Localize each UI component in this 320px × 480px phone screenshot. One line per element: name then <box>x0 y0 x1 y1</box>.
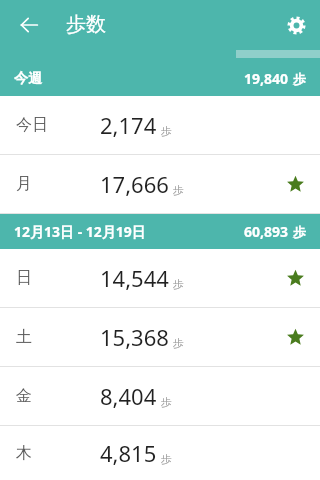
staticText: 歩 <box>173 336 184 350</box>
button[interactable]: 日 <box>0 249 320 307</box>
staticText: 2,174 <box>100 110 157 140</box>
staticText: 歩数 <box>66 12 106 37</box>
button[interactable]: 金 <box>0 367 320 425</box>
button[interactable]: Back <box>12 8 46 42</box>
staticText: 木 <box>16 443 32 463</box>
staticText: 今週 <box>14 70 42 88</box>
staticText: 歩 <box>293 224 306 240</box>
staticText: 14,544 <box>100 263 169 293</box>
staticText: 19,840 <box>244 69 289 88</box>
button[interactable]: Settings <box>279 8 313 42</box>
staticText: 8,404 <box>100 381 157 411</box>
button[interactable]: 月 <box>0 155 320 213</box>
staticText: 4,815 <box>100 438 157 468</box>
staticText: 歩 <box>161 124 172 138</box>
button[interactable]: 土 <box>0 308 320 366</box>
staticText: 歩 <box>173 183 184 197</box>
staticText: 日 <box>16 268 32 288</box>
staticText: 12月13日 - 12月19日 <box>14 222 146 241</box>
staticText: 金 <box>16 386 32 406</box>
staticText: 60,893 <box>244 222 289 241</box>
staticText: 歩 <box>173 277 184 291</box>
button[interactable]: 12月13日 - 12月19日 <box>0 214 320 249</box>
staticText: 土 <box>16 327 32 347</box>
button[interactable]: 今週 <box>0 50 320 96</box>
staticText: 17,666 <box>100 169 169 199</box>
button[interactable]: 木 <box>0 426 320 480</box>
staticText: 15,368 <box>100 322 169 352</box>
staticText: 歩 <box>161 452 172 466</box>
staticText: 歩 <box>161 395 172 409</box>
staticText: 歩 <box>293 71 306 87</box>
staticText: 月 <box>16 174 32 194</box>
button[interactable]: 今日 <box>0 96 320 154</box>
staticText: 今日 <box>16 115 48 135</box>
